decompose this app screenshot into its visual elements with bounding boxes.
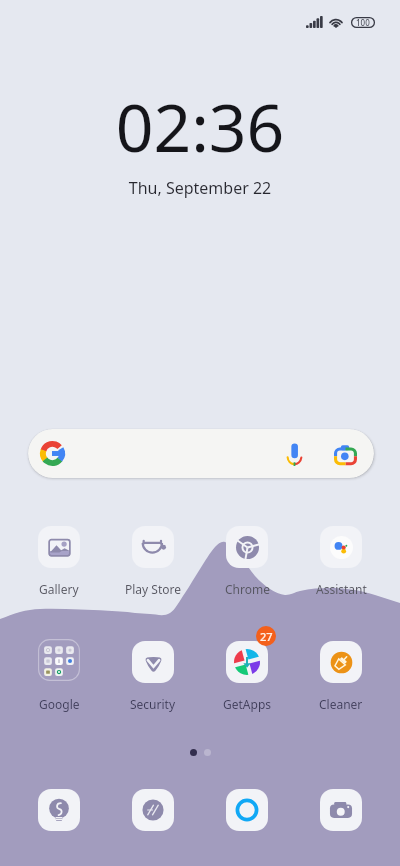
button[interactable]: Cleaner bbox=[294, 641, 388, 712]
button[interactable]: 27 bbox=[200, 641, 294, 712]
button[interactable]: Play Store bbox=[106, 526, 200, 597]
button[interactable]: Search bbox=[28, 429, 374, 478]
button[interactable]: Gallery bbox=[12, 526, 106, 597]
button[interactable]: Google folder bbox=[38, 639, 80, 681]
button[interactable]: Assistant bbox=[294, 526, 388, 597]
button[interactable]: Security bbox=[106, 641, 200, 712]
button[interactable]: Notes bbox=[132, 789, 174, 831]
button[interactable]: Google folder bbox=[12, 641, 106, 712]
staticText: Gallery bbox=[39, 581, 79, 597]
staticText: Google bbox=[39, 696, 80, 712]
staticText: Security bbox=[130, 696, 176, 712]
button[interactable]: Themes bbox=[38, 789, 80, 831]
staticText: 100 bbox=[356, 17, 370, 28]
staticText: GetApps bbox=[223, 696, 272, 712]
button[interactable]: Voice search bbox=[274, 434, 314, 474]
staticText: Thu, September 22 bbox=[0, 177, 400, 199]
staticText: 27 bbox=[260, 629, 273, 644]
button[interactable]: Chrome bbox=[200, 526, 294, 597]
button[interactable]: Mi Browser bbox=[226, 789, 268, 831]
staticText: Assistant bbox=[316, 581, 367, 597]
staticText: Play Store bbox=[125, 581, 181, 597]
staticText: Chrome bbox=[225, 581, 270, 597]
button[interactable]: Camera bbox=[320, 789, 362, 831]
staticText: Cleaner bbox=[319, 696, 363, 712]
staticText: 02:36 bbox=[0, 81, 400, 171]
button[interactable]: Google Lens bbox=[325, 434, 365, 474]
